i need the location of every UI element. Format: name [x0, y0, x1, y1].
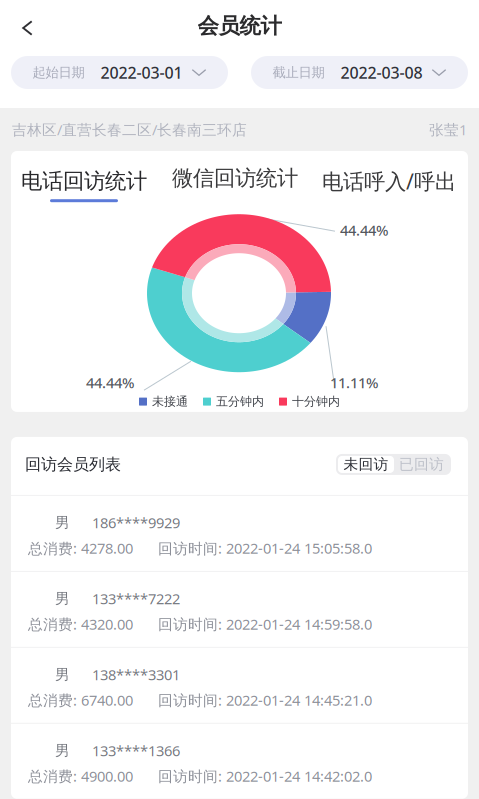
staticText: 总消费: 4320.00	[28, 614, 133, 634]
staticText: 十分钟内	[292, 394, 340, 409]
staticText: 未接通	[152, 394, 188, 409]
staticText: 回访时间: 2022-01-24 14:45:21.0	[158, 690, 372, 710]
staticText: 会员统计	[197, 13, 281, 39]
button[interactable]: 男	[11, 724, 468, 799]
button[interactable]: 男	[11, 572, 468, 647]
staticText: 张莹1	[429, 120, 467, 139]
staticText: 男	[55, 514, 70, 532]
staticText: 电话回访统计	[21, 168, 147, 194]
button[interactable]: 截止日期	[251, 56, 468, 89]
button[interactable]: 起始日期	[11, 56, 228, 89]
staticText: 133****7222	[92, 589, 180, 608]
button[interactable]: 男	[11, 496, 468, 571]
staticText: 11.11%	[330, 373, 378, 392]
staticText: 回访会员列表	[25, 455, 121, 474]
staticText: 男	[55, 741, 70, 759]
button[interactable]: 微信回访统计	[172, 165, 298, 205]
staticText: 未回访	[343, 455, 388, 473]
staticText: 133****1366	[92, 741, 180, 760]
button[interactable]: 男	[11, 648, 468, 723]
staticText: 回访时间: 2022-01-24 14:42:02.0	[158, 766, 372, 786]
staticText: 截止日期	[272, 64, 324, 81]
staticText: 2022-03-01	[100, 62, 182, 83]
staticText: 已回访	[399, 455, 444, 473]
staticText: 186****9929	[92, 513, 180, 532]
staticText: 44.44%	[86, 373, 134, 392]
staticText: 回访时间: 2022-01-24 15:05:58.0	[158, 538, 372, 558]
staticText: 男	[55, 590, 70, 608]
staticText: 电话呼入/呼出	[322, 167, 456, 195]
staticText: 总消费: 4278.00	[28, 538, 133, 558]
staticText: 总消费: 4900.00	[28, 766, 133, 786]
button[interactable]: 返回	[0, 0, 51, 52]
staticText: 2022-03-08	[340, 62, 422, 83]
staticText: 回访时间: 2022-01-24 14:59:58.0	[158, 614, 372, 634]
staticText: 吉林区/直营长春二区/长春南三环店	[12, 120, 247, 139]
staticText: 总消费: 6740.00	[28, 690, 133, 710]
staticText: 起始日期	[32, 64, 84, 81]
staticText: 五分钟内	[216, 394, 264, 409]
button[interactable]: 已回访	[394, 456, 449, 473]
staticText: 男	[55, 666, 70, 684]
button[interactable]: 电话回访统计	[21, 168, 147, 202]
staticText: 44.44%	[340, 220, 388, 240]
button[interactable]: 电话呼入/呼出	[322, 167, 456, 203]
staticText: 138****3301	[92, 665, 180, 684]
button[interactable]: 未回访	[338, 456, 394, 473]
staticText: 微信回访统计	[172, 165, 298, 191]
